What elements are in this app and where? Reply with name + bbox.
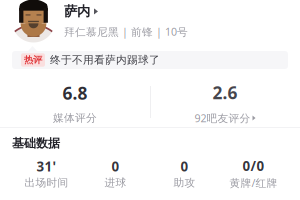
staticText: 媒体评分	[53, 111, 97, 125]
staticText: 助攻	[173, 176, 195, 189]
staticText: 出场时间	[24, 176, 68, 189]
button[interactable]: 2.6	[150, 86, 300, 120]
staticText: 终于不用看萨内踢球了	[50, 53, 160, 66]
staticText: 热评	[24, 54, 42, 66]
staticText: 萨内	[64, 3, 90, 20]
staticText: 拜仁慕尼黑 | 前锋 | 10号	[64, 25, 188, 39]
button[interactable]: 萨内	[12, 0, 300, 42]
staticText: 黄牌/红牌	[229, 176, 277, 190]
staticText: 92吧友评分	[194, 111, 250, 125]
staticText: 基础数据	[12, 136, 60, 151]
staticText: 2.6	[212, 81, 237, 104]
staticText: 进球	[104, 176, 126, 189]
staticText: 31'	[36, 157, 56, 175]
staticText: 0	[111, 157, 119, 175]
staticText: 0/0	[242, 157, 264, 175]
staticText: 0	[180, 157, 188, 175]
button[interactable]: 6.8	[0, 86, 150, 120]
staticText: 6.8	[62, 81, 87, 104]
